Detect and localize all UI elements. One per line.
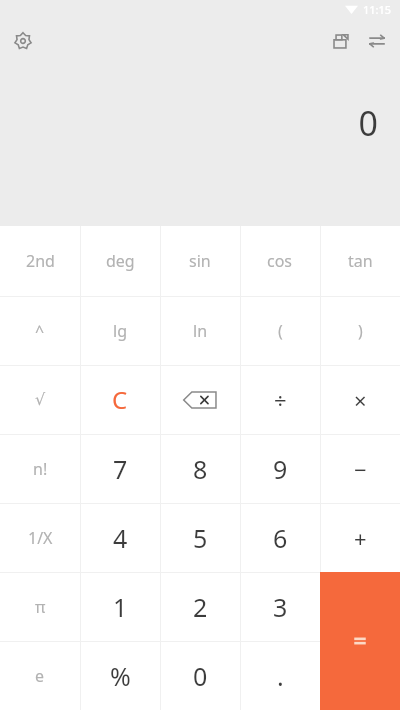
staticText: 4 [113, 521, 128, 555]
staticText: × [354, 385, 367, 415]
staticText: 8 [193, 452, 208, 486]
button[interactable]: π [0, 572, 80, 641]
staticText: 0 [193, 659, 208, 693]
button[interactable]: Convert [362, 26, 392, 56]
button[interactable]: × [320, 365, 400, 434]
other: Backspace [183, 391, 217, 409]
button[interactable] [320, 572, 400, 710]
staticText: π [35, 596, 46, 618]
staticText: ( [278, 320, 283, 342]
button[interactable]: − [320, 434, 400, 503]
button[interactable]: √ [0, 365, 80, 434]
button[interactable]: sin [160, 226, 240, 296]
button[interactable]: 2 [160, 572, 240, 641]
button[interactable]: 2nd [0, 226, 80, 296]
staticText: ln [193, 320, 208, 342]
staticText: ) [358, 320, 363, 342]
button[interactable]: % [80, 641, 160, 710]
button[interactable]: cos [240, 226, 320, 296]
button[interactable]: Settings [8, 26, 38, 56]
button[interactable]: ) [320, 296, 400, 365]
button[interactable]: 5 [160, 503, 240, 572]
staticText: 11:15 [363, 2, 392, 17]
button[interactable]: + [320, 503, 400, 572]
button[interactable]: C [80, 365, 160, 434]
button[interactable]: 1 [80, 572, 160, 641]
staticText: − [354, 454, 367, 484]
staticText: deg [106, 250, 135, 272]
staticText: 7 [113, 452, 128, 486]
button[interactable]: Backspace [160, 365, 240, 434]
staticText: . [277, 659, 284, 693]
staticText: 6 [273, 521, 288, 555]
button[interactable]: 6 [240, 503, 320, 572]
staticText: 1 [113, 590, 128, 624]
button[interactable]: ÷ [240, 365, 320, 434]
button[interactable]: ^ [0, 296, 80, 365]
button[interactable]: e [0, 641, 80, 710]
staticText: 0 [358, 100, 378, 146]
staticText: 2nd [26, 250, 55, 272]
button[interactable]: . [240, 641, 320, 710]
staticText: lg [113, 320, 127, 342]
button[interactable]: 1/X [0, 503, 80, 572]
staticText: cos [267, 250, 293, 272]
button[interactable]: 3 [240, 572, 320, 641]
staticText: % [110, 659, 131, 693]
staticText: + [354, 523, 367, 553]
staticText: e [35, 665, 45, 687]
button[interactable]: n! [0, 434, 80, 503]
staticText: ÷ [274, 385, 287, 415]
staticText: 2 [193, 590, 208, 624]
button[interactable]: ln [160, 296, 240, 365]
button[interactable]: tan [320, 226, 400, 296]
button[interactable]: 0 [160, 641, 240, 710]
button[interactable]: History [326, 26, 356, 56]
button[interactable]: lg [80, 296, 160, 365]
staticText: √ [35, 390, 46, 409]
staticText: n! [33, 458, 48, 480]
button[interactable]: 8 [160, 434, 240, 503]
button[interactable]: 4 [80, 503, 160, 572]
button[interactable]: 9 [240, 434, 320, 503]
staticText: ^ [35, 320, 45, 342]
staticText: 3 [273, 590, 288, 624]
button[interactable]: 7 [80, 434, 160, 503]
staticText: tan [348, 250, 373, 272]
staticText: 1/X [28, 527, 53, 549]
button[interactable]: deg [80, 226, 160, 296]
staticText: sin [189, 250, 211, 272]
staticText: 5 [193, 521, 208, 555]
staticText: 9 [273, 452, 288, 486]
staticText: C [112, 383, 128, 416]
button[interactable]: ( [240, 296, 320, 365]
